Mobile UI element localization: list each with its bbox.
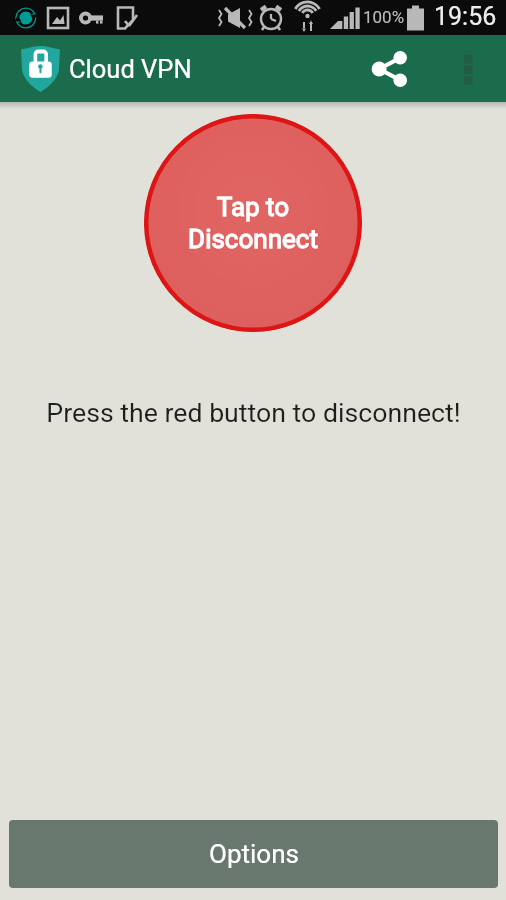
staticText: Tap to Disconnect	[188, 192, 318, 254]
staticText: Options	[209, 839, 299, 869]
staticText: Press the red button to disconnect!	[46, 397, 461, 428]
staticText: Cloud VPN	[69, 54, 192, 84]
button[interactable]: Share	[344, 36, 436, 102]
button[interactable]: More options	[436, 37, 500, 101]
staticText: 19:56	[434, 2, 497, 31]
button[interactable]: Tap to Disconnect	[144, 114, 362, 332]
button[interactable]: Options	[9, 820, 498, 888]
staticText: 100%	[363, 7, 405, 27]
